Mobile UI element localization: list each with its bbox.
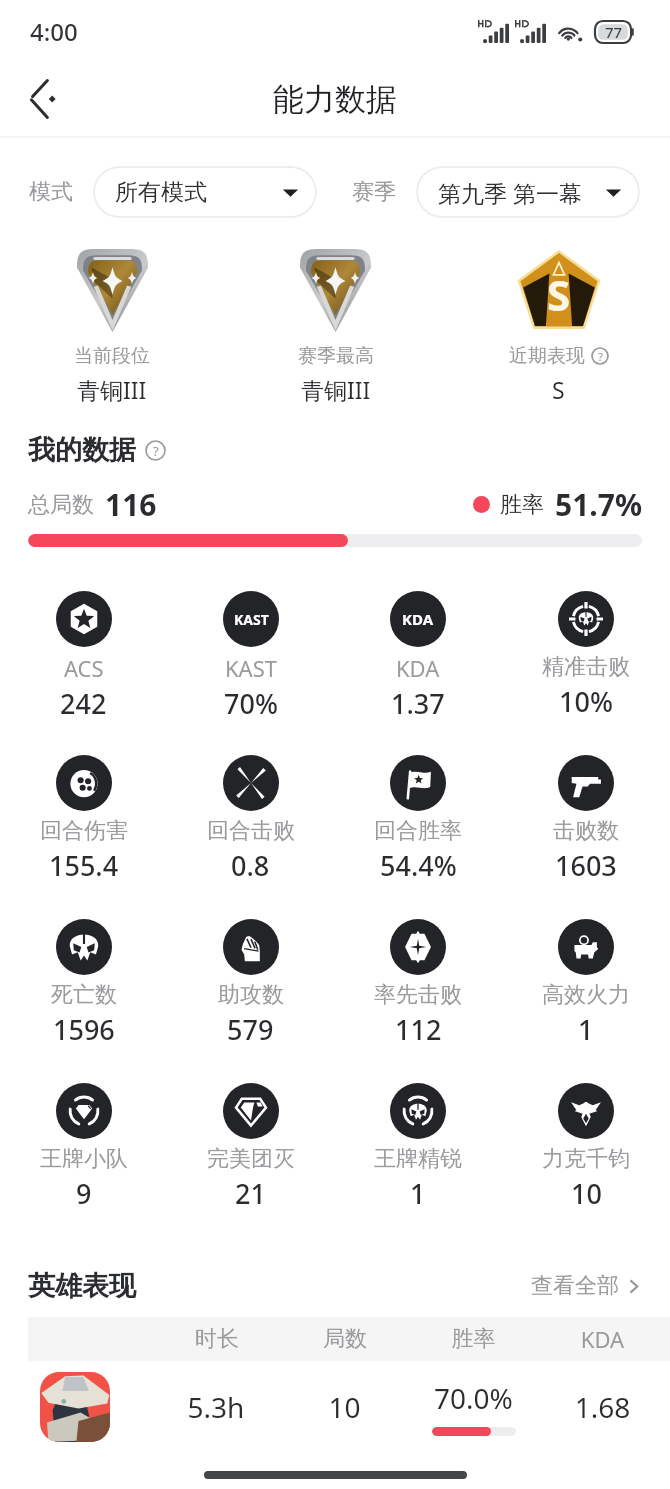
button[interactable]: 高效火力: [502, 919, 670, 1083]
button[interactable]: Back: [15, 69, 75, 129]
staticText: 当前段位: [74, 344, 150, 368]
button[interactable]: 王牌小队: [0, 1083, 167, 1247]
staticText: 局数: [281, 1325, 409, 1353]
button[interactable]: 王牌精锐: [334, 1083, 502, 1247]
staticText: 10: [571, 1175, 602, 1212]
staticText: ?: [598, 349, 603, 364]
staticText: 77: [605, 22, 623, 42]
button[interactable]: 回合胜率: [334, 755, 502, 919]
staticText: 胜率: [500, 491, 544, 519]
staticText: 赛季: [352, 178, 396, 206]
button[interactable]: 当前段位: [0, 246, 224, 405]
staticText: 1.37: [391, 685, 445, 722]
staticText: 回合击败: [207, 817, 295, 845]
staticText: 所有模式: [115, 178, 207, 207]
staticText: 率先击败: [374, 981, 462, 1009]
staticText: 模式: [29, 178, 73, 206]
staticText: 王牌精锐: [374, 1145, 462, 1173]
staticText: 70.0%: [434, 1379, 513, 1417]
staticText: 回合伤害: [40, 817, 128, 845]
staticText: 回合胜率: [374, 817, 462, 845]
staticText: ACS: [64, 653, 104, 683]
staticText: KDA: [538, 1324, 667, 1354]
staticText: KAST: [234, 610, 269, 629]
staticText: 21: [235, 1175, 266, 1212]
button[interactable]: 第九季 第一幕: [416, 166, 640, 218]
staticText: 112: [395, 1011, 442, 1048]
staticText: 助攻数: [218, 981, 284, 1009]
button[interactable]: 回合伤害: [0, 755, 167, 919]
staticText: 579: [227, 1011, 274, 1048]
staticText: 精准击败: [542, 653, 630, 681]
staticText: 116: [105, 484, 157, 525]
button[interactable]: 击败数: [502, 755, 670, 919]
staticText: 51.7%: [555, 484, 642, 525]
staticText: 1596: [53, 1011, 115, 1048]
staticText: 英雄表现: [28, 1269, 136, 1303]
staticText: 力克千钧: [542, 1145, 630, 1173]
staticText: ?: [153, 442, 159, 460]
button[interactable]: S: [447, 246, 670, 405]
staticText: 完美团灭: [207, 1145, 295, 1173]
staticText: 查看全部: [531, 1272, 619, 1300]
staticText: 时长: [153, 1325, 281, 1353]
button[interactable]: 回合击败: [167, 755, 334, 919]
staticText: 1: [410, 1175, 426, 1212]
staticText: 1603: [555, 847, 617, 884]
staticText: 1: [578, 1011, 594, 1048]
staticText: 青铜III: [77, 374, 147, 405]
staticText: 4:00: [30, 15, 78, 48]
staticText: 青铜III: [301, 374, 371, 405]
staticText: 死亡数: [51, 981, 117, 1009]
staticText: 155.4: [49, 847, 119, 884]
staticText: S: [547, 266, 571, 323]
button[interactable]: 精准击败: [502, 591, 670, 755]
staticText: 10: [280, 1388, 409, 1426]
button[interactable]: ACS: [0, 591, 167, 755]
staticText: KDA: [396, 653, 440, 683]
staticText: 王牌小队: [40, 1145, 128, 1173]
staticText: 赛季最高: [298, 344, 374, 368]
button[interactable]: 完美团灭: [167, 1083, 334, 1247]
staticText: S: [552, 374, 565, 405]
staticText: 能力数据: [273, 80, 397, 119]
staticText: 近期表现: [509, 344, 585, 368]
button[interactable]: KAST: [167, 591, 334, 755]
staticText: 242: [60, 685, 107, 722]
button[interactable]: 查看全部: [531, 1272, 642, 1300]
staticText: 70%: [224, 685, 278, 722]
button[interactable]: 力克千钧: [502, 1083, 670, 1247]
staticText: 10%: [559, 683, 613, 720]
staticText: 我的数据: [28, 433, 136, 467]
staticText: 胜率: [409, 1325, 538, 1353]
button[interactable]: 所有模式: [93, 166, 317, 218]
staticText: 第九季 第一幕: [438, 177, 582, 208]
staticText: 5.3h: [152, 1388, 280, 1426]
button[interactable]: 赛季最高: [224, 246, 447, 405]
staticText: 高效火力: [542, 981, 630, 1009]
staticText: 0.8: [231, 847, 270, 884]
staticText: 54.4%: [380, 847, 457, 884]
staticText: 1.68: [538, 1388, 667, 1426]
button[interactable]: 助攻数: [167, 919, 334, 1083]
button[interactable]: 死亡数: [0, 919, 167, 1083]
button[interactable]: KDA: [334, 591, 502, 755]
staticText: 9: [76, 1175, 92, 1212]
staticText: 击败数: [553, 817, 619, 845]
button[interactable]: 5.3h: [0, 1361, 670, 1453]
staticText: KAST: [225, 653, 277, 683]
staticText: 总局数: [28, 491, 94, 519]
staticText: KDA: [402, 609, 434, 629]
button[interactable]: 率先击败: [334, 919, 502, 1083]
